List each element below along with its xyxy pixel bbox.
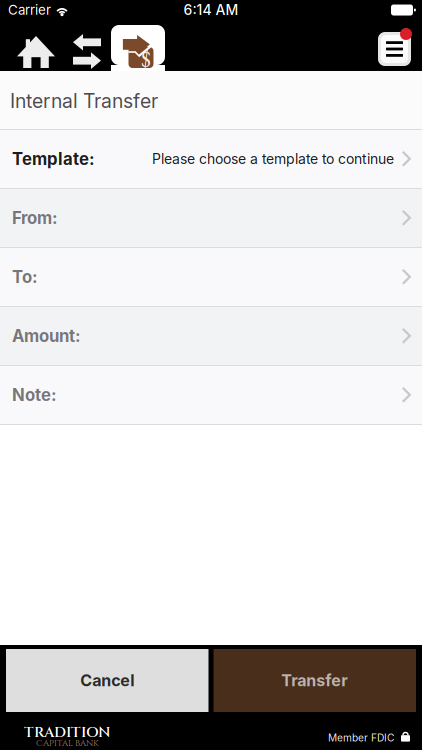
button[interactable]: To: xyxy=(0,248,422,307)
staticText: From: xyxy=(12,208,58,228)
staticText: Note: xyxy=(12,385,57,405)
staticText: Please choose a template to continue xyxy=(152,150,394,167)
button[interactable]: Transfer xyxy=(213,649,416,712)
button[interactable]: Menu xyxy=(378,28,422,71)
staticText: Cancel xyxy=(80,671,134,690)
staticText: Carrier xyxy=(8,2,51,18)
staticText: Transfer xyxy=(281,671,348,690)
button[interactable]: Amount: xyxy=(0,307,422,366)
staticText: Template: xyxy=(12,149,95,169)
button[interactable]: From: xyxy=(0,189,422,248)
button[interactable]: Note: xyxy=(0,366,422,425)
button[interactable]: Internal Transfer xyxy=(101,25,165,71)
staticText: TRADITION xyxy=(24,723,111,743)
button[interactable]: Template: xyxy=(0,130,422,189)
staticText: Internal Transfer xyxy=(10,89,158,113)
button[interactable]: Home xyxy=(0,20,55,71)
staticText: Member FDIC xyxy=(328,732,394,744)
staticText: CAPITAL BANK xyxy=(36,737,99,749)
button[interactable]: Transfers xyxy=(55,20,101,71)
staticText: $ xyxy=(141,44,151,74)
staticText: To: xyxy=(12,267,38,287)
staticText: Amount: xyxy=(12,326,81,346)
staticText: 6:14 AM xyxy=(183,1,238,18)
button[interactable]: Cancel xyxy=(6,649,208,712)
